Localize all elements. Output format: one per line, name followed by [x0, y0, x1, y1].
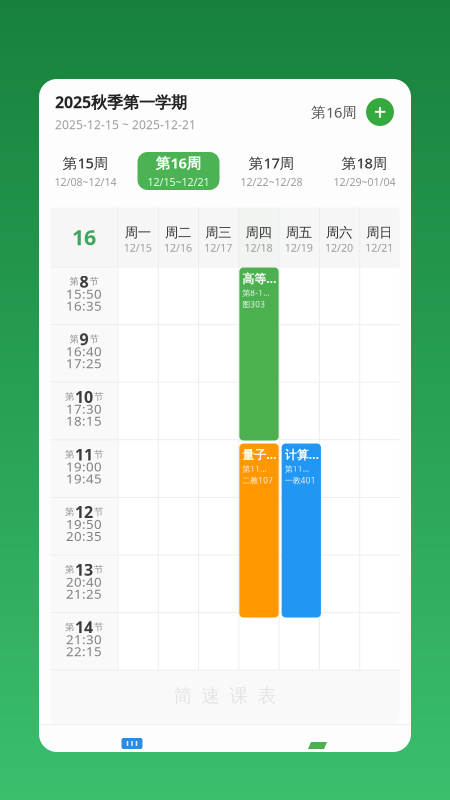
staticText: 12/15: [124, 240, 152, 255]
staticText: 第: [69, 333, 78, 345]
staticText: 12/15~12/21: [147, 175, 209, 189]
button[interactable]: 量子…: [239, 443, 279, 617]
staticText: 周三: [205, 224, 231, 241]
staticText: 简: [173, 684, 192, 707]
staticText: 18:15: [66, 412, 102, 429]
button[interactable]: 添加课程: [357, 92, 403, 132]
staticText: 10: [75, 386, 93, 407]
staticText: 12/21: [365, 240, 393, 255]
staticText: 17:30: [66, 400, 102, 417]
staticText: 12/19: [285, 240, 313, 255]
staticText: 第15周: [62, 153, 108, 173]
button[interactable]: 周三: [198, 207, 238, 266]
staticText: 第: [65, 391, 74, 402]
staticText: 第11…: [242, 463, 266, 474]
staticText: 第: [65, 564, 74, 575]
staticText: 14: [75, 616, 93, 638]
staticText: 节: [94, 621, 103, 633]
staticText: 周五: [286, 224, 312, 241]
staticText: 节: [94, 564, 103, 575]
staticText: 周二: [165, 224, 191, 241]
staticText: 15:50: [66, 285, 102, 302]
staticText: 节: [89, 276, 98, 287]
staticText: 计算…: [285, 446, 319, 462]
staticText: 第16周: [311, 102, 357, 122]
staticText: 速: [201, 684, 220, 707]
staticText: 20:35: [66, 527, 102, 545]
staticText: 19:50: [66, 515, 102, 533]
staticText: 12: [75, 501, 93, 522]
button[interactable]: 周四: [238, 207, 279, 266]
button[interactable]: 高等…: [239, 267, 279, 440]
button[interactable]: 计算…: [282, 443, 321, 617]
staticText: 第: [65, 621, 74, 633]
staticText: 表: [257, 684, 276, 707]
staticText: 第: [65, 449, 74, 460]
button[interactable]: 第16周: [132, 145, 225, 197]
staticText: 第8-1…: [242, 287, 269, 298]
staticText: 19:45: [66, 469, 102, 487]
staticText: 周日: [366, 224, 392, 241]
staticText: 节: [89, 333, 98, 345]
staticText: 第11…: [285, 463, 309, 474]
staticText: +: [373, 97, 386, 127]
staticText: 11: [75, 444, 93, 465]
staticText: 图303: [242, 299, 265, 310]
staticText: 一教401: [285, 475, 316, 486]
staticText: 2025秋季第一学期: [55, 91, 187, 113]
staticText: 17:25: [66, 354, 102, 372]
staticText: 课: [229, 684, 248, 707]
staticText: 9: [79, 328, 88, 350]
button[interactable]: 第18周: [318, 145, 411, 197]
staticText: 第16周: [155, 153, 201, 173]
staticText: 22:15: [66, 642, 102, 660]
staticText: 高等…: [242, 270, 276, 286]
staticText: 16: [72, 223, 96, 251]
staticText: 12/29~01/04: [333, 175, 395, 189]
staticText: 2025-12-15 ~ 2025-12-21: [55, 117, 196, 133]
button[interactable]: 第15周: [39, 145, 132, 197]
staticText: 节: [94, 391, 103, 402]
staticText: 第18周: [341, 153, 387, 173]
staticText: 21:30: [66, 630, 102, 648]
button[interactable]: 周五: [279, 207, 319, 266]
staticText: 第: [69, 276, 78, 287]
button[interactable]: 周六: [319, 207, 359, 266]
staticText: 周六: [326, 224, 352, 241]
staticText: 节: [94, 449, 103, 460]
staticText: 13: [75, 559, 93, 580]
staticText: 第17周: [248, 153, 294, 173]
staticText: 21:25: [66, 585, 102, 602]
staticText: 12/16: [164, 240, 192, 255]
staticText: 量子…: [242, 446, 276, 462]
staticText: 第: [65, 506, 74, 518]
button[interactable]: 第17周: [225, 145, 318, 197]
button[interactable]: 我的: [225, 725, 411, 759]
staticText: 节: [94, 506, 103, 518]
staticText: 8: [79, 271, 88, 292]
staticText: 12/22~12/28: [240, 175, 302, 189]
staticText: 19:00: [66, 457, 102, 475]
button[interactable]: 周一: [117, 207, 158, 266]
staticText: 课表: [121, 751, 143, 764]
staticText: 周四: [245, 224, 271, 241]
staticText: 12/20: [325, 240, 353, 255]
staticText: 16:40: [66, 342, 102, 360]
button[interactable]: 课表: [39, 725, 225, 759]
staticText: 周一: [125, 224, 151, 241]
staticText: 二教107: [242, 475, 273, 486]
staticText: 20:40: [66, 573, 102, 590]
staticText: 12/08~12/14: [54, 175, 116, 189]
staticText: 12/17: [204, 240, 232, 255]
staticText: 12/18: [244, 240, 272, 255]
button[interactable]: 周二: [158, 207, 198, 266]
button[interactable]: 周日: [359, 207, 399, 266]
staticText: 16:35: [66, 297, 102, 314]
